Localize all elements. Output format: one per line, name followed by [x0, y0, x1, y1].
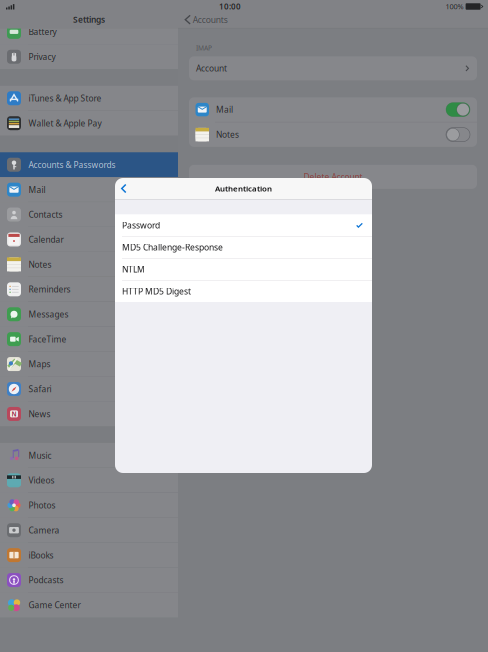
staticText: Settings	[73, 14, 105, 25]
staticText: Accounts	[193, 14, 228, 25]
button[interactable]: Maps	[0, 352, 178, 376]
button[interactable]: NTLM	[115, 258, 372, 280]
staticText: Wallet & Apple Pay	[28, 118, 101, 129]
staticText: iBooks	[28, 549, 53, 561]
staticText: Podcasts	[28, 574, 63, 586]
staticText: Password	[122, 220, 160, 231]
button[interactable]: Contacts	[0, 202, 178, 227]
staticText: Reminders	[28, 284, 70, 295]
staticText: Photos	[28, 500, 55, 511]
button[interactable]: Safari	[0, 376, 178, 401]
staticText: Messages	[28, 309, 68, 320]
button[interactable]: Password	[115, 214, 372, 236]
staticText: Battery	[28, 26, 56, 37]
button[interactable]: Camera	[0, 518, 178, 543]
staticText: Videos	[28, 475, 54, 486]
button[interactable]: Back	[115, 179, 132, 198]
button[interactable]: Photos	[0, 493, 178, 518]
staticText: Authentication	[215, 183, 272, 194]
button[interactable]: Videos	[0, 468, 178, 493]
staticText: Mail	[216, 104, 233, 115]
staticText: N	[11, 410, 16, 418]
staticText: IMAP	[196, 43, 212, 52]
button[interactable]: HTTP MD5 Digest	[115, 280, 372, 302]
staticText: Notes	[216, 129, 239, 140]
button[interactable]: Reminders	[0, 277, 178, 302]
staticText: NTLM	[122, 264, 145, 275]
staticText: 100%	[446, 2, 464, 11]
button[interactable]: Calendar	[0, 227, 178, 252]
staticText: Notes	[28, 259, 51, 270]
button[interactable]: Podcasts	[0, 568, 178, 592]
button[interactable]: Game Center	[0, 592, 178, 617]
staticText: MD5 Challenge-Response	[122, 242, 223, 253]
button[interactable]: Privacy	[0, 44, 178, 69]
button[interactable]: iTunes & App Store	[0, 86, 178, 111]
staticText: News	[28, 408, 50, 419]
staticText: Mail	[28, 184, 45, 195]
button[interactable]: Notes	[189, 122, 477, 147]
button[interactable]: iBooks	[0, 543, 178, 568]
button[interactable]: FaceTime	[0, 327, 178, 352]
button[interactable]: Wallet & Apple Pay	[0, 111, 178, 136]
staticText: FaceTime	[28, 334, 66, 345]
staticText: Maps	[28, 358, 50, 370]
staticText: Privacy	[28, 51, 55, 62]
button[interactable]: Messages	[0, 302, 178, 327]
staticText: Game Center	[28, 599, 80, 611]
staticText: iTunes & App Store	[28, 93, 101, 104]
button[interactable]: Accounts & Passwords	[0, 152, 178, 177]
staticText: Safari	[28, 383, 51, 395]
staticText: 10:00	[219, 1, 241, 12]
staticText: Calendar	[28, 234, 63, 245]
button[interactable]: Mail	[189, 97, 477, 122]
button[interactable]: N	[0, 401, 178, 426]
button[interactable]: Notes	[0, 252, 178, 277]
button[interactable]: Delete Account	[189, 165, 477, 189]
staticText: Account	[196, 63, 227, 74]
staticText: Accounts & Passwords	[28, 159, 115, 170]
staticText: Delete Account	[303, 171, 362, 182]
button[interactable]: Music	[0, 443, 178, 468]
button[interactable]: MD5 Challenge-Response	[115, 236, 372, 258]
button[interactable]: Mail	[0, 177, 178, 202]
staticText: Music	[28, 450, 51, 461]
button[interactable]: Accounts	[178, 14, 228, 28]
staticText: HTTP MD5 Digest	[122, 286, 191, 297]
staticText: Contacts	[28, 209, 62, 220]
button[interactable]: Battery	[0, 19, 178, 44]
staticText: Camera	[28, 525, 59, 536]
button[interactable]: Account	[189, 56, 477, 80]
